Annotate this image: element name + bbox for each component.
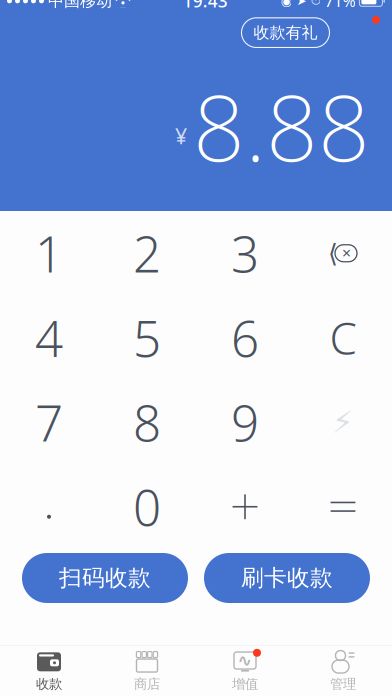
button[interactable]: 扫码收款 (22, 553, 188, 603)
staticText: 19:43 (183, 0, 228, 12)
button[interactable]: 商店 (98, 645, 196, 696)
staticText: ⟨ (328, 239, 338, 268)
button[interactable] (0, 211, 98, 295)
staticText: 9 (231, 389, 259, 455)
button[interactable]: Plus (196, 464, 294, 549)
button[interactable]: 收款 (0, 645, 98, 696)
staticText: 4 (35, 305, 63, 370)
button[interactable]: 刷卡收款 (204, 553, 370, 603)
staticText: ¥ (175, 122, 187, 150)
button[interactable]: Decimal point (0, 464, 98, 549)
staticText: 收款有礼 (253, 23, 317, 42)
staticText: 收款 (36, 676, 62, 692)
button[interactable] (0, 295, 98, 380)
staticText: 8 (133, 389, 161, 455)
staticText: ⚡︎ (332, 405, 354, 440)
staticText: 1 (35, 220, 63, 286)
button[interactable] (0, 380, 98, 464)
staticText: 管理 (330, 676, 356, 692)
button[interactable] (196, 295, 294, 380)
staticText: ∿ (237, 651, 252, 670)
button[interactable] (196, 211, 294, 295)
button[interactable] (294, 295, 392, 380)
staticText: 6 (231, 305, 259, 370)
staticText: 0 (133, 474, 161, 539)
button[interactable]: 收款有礼 (193, 18, 378, 47)
staticText: 5 (133, 305, 161, 370)
staticText: 刷卡收款 (241, 564, 333, 592)
staticText: 扫码收款 (59, 564, 151, 592)
button[interactable] (98, 380, 196, 464)
button[interactable]: Equals (294, 464, 392, 549)
staticText: C (329, 308, 356, 367)
button[interactable]: ∿ (196, 645, 294, 696)
staticText: ⏱ (310, 0, 320, 7)
staticText: 中国移动 (48, 0, 112, 11)
staticText: 7 (35, 389, 63, 455)
staticText: ➤ (296, 0, 306, 8)
staticText: 3 (231, 220, 259, 286)
staticText: 71% (324, 0, 355, 11)
button[interactable] (98, 295, 196, 380)
button[interactable] (98, 464, 196, 549)
staticText: 8.88 (193, 66, 370, 186)
staticText: ✕ (341, 246, 351, 260)
staticText: 商店 (134, 676, 160, 692)
button[interactable]: 管理 (294, 645, 392, 696)
staticText: ◉ (280, 0, 292, 8)
button[interactable] (196, 380, 294, 464)
button[interactable] (98, 211, 196, 295)
staticText: 增值 (232, 676, 258, 692)
staticText: 2 (133, 220, 161, 286)
button[interactable]: Delete (294, 211, 392, 295)
